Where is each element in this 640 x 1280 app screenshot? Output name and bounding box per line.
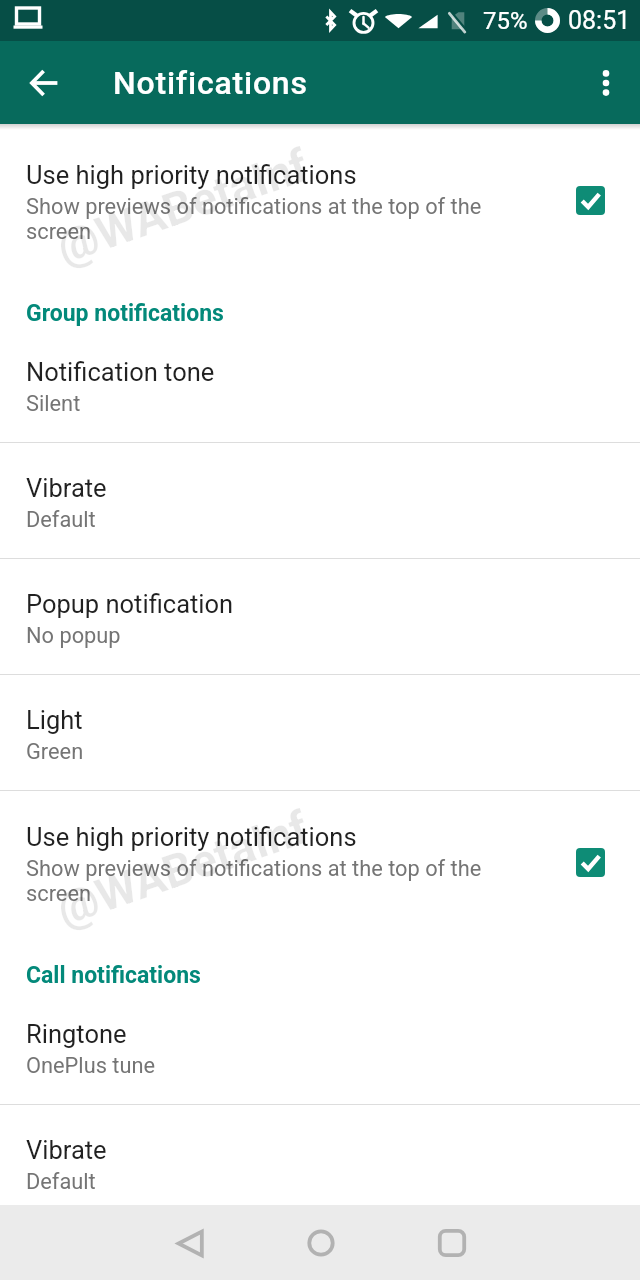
button[interactable]: Vibrate xyxy=(0,1105,640,1205)
staticText: @WABetaInfo xyxy=(50,794,334,942)
button[interactable]: Back xyxy=(158,1211,222,1275)
staticText: Green xyxy=(26,739,84,765)
button[interactable]: Home xyxy=(289,1211,353,1275)
button[interactable]: Use high priority notifications xyxy=(0,791,640,906)
staticText: 08:51 xyxy=(568,6,631,35)
staticText: Notification tone xyxy=(26,357,215,387)
staticText: @WABetaInfo xyxy=(50,132,334,280)
staticText: Popup notification xyxy=(26,589,234,619)
staticText: 75% xyxy=(483,7,528,35)
staticText: Show previews of notifications at the to… xyxy=(26,194,482,244)
button[interactable]: More options xyxy=(577,54,635,112)
staticText: Vibrate xyxy=(26,1135,107,1165)
button[interactable]: Popup notification xyxy=(0,559,640,675)
staticText: Group notifications xyxy=(26,300,224,327)
staticText: Light xyxy=(26,705,83,735)
button[interactable]: Use high priority notifications xyxy=(576,848,605,877)
staticText: Default xyxy=(26,507,96,533)
staticText: Use high priority notifications xyxy=(26,160,357,190)
staticText: OnePlus tune xyxy=(26,1053,156,1079)
button[interactable]: Notification tone xyxy=(0,327,640,443)
staticText: Vibrate xyxy=(26,473,107,503)
button[interactable]: Use high priority notifications xyxy=(0,124,640,244)
staticText: Show previews of notifications at the to… xyxy=(26,856,482,906)
button[interactable]: Ringtone xyxy=(0,989,640,1105)
staticText: Ringtone xyxy=(26,1019,127,1049)
button[interactable]: Vibrate xyxy=(0,443,640,559)
button[interactable]: Use high priority notifications xyxy=(576,186,605,215)
button[interactable]: Recents xyxy=(420,1211,484,1275)
staticText: Silent xyxy=(26,391,81,417)
button[interactable]: Light xyxy=(0,675,640,791)
staticText: Call notifications xyxy=(26,962,201,989)
button[interactable]: Back xyxy=(14,54,72,112)
staticText: No popup xyxy=(26,623,121,649)
staticText: Default xyxy=(26,1169,96,1195)
staticText: Use high priority notifications xyxy=(26,822,357,852)
staticText: Notifications xyxy=(113,64,308,102)
